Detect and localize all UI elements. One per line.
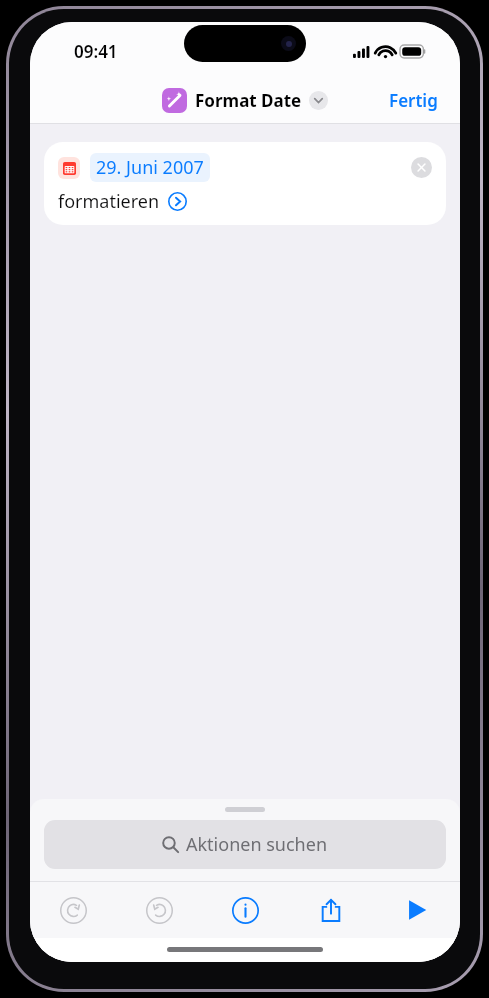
button[interactable]: Teilen	[288, 882, 374, 938]
staticText: 09:41	[74, 40, 118, 63]
staticText: 29. Juni 2007	[96, 155, 204, 180]
button[interactable]: Weitere Optionen	[168, 192, 187, 211]
button[interactable]: Format Date	[162, 88, 328, 113]
staticText: formatieren	[58, 189, 160, 214]
button[interactable]: Ausführen	[374, 882, 460, 938]
button[interactable]: Informationen	[202, 882, 288, 938]
button[interactable]: Widerrufen	[30, 882, 116, 938]
other: Menü öffnen	[309, 91, 328, 110]
button[interactable]: Fertig	[385, 85, 442, 116]
button[interactable]: Aktion entfernen	[411, 157, 432, 178]
button[interactable]: 29. Juni 2007	[90, 153, 210, 182]
button[interactable]: Wiederholen	[116, 882, 202, 938]
button[interactable]: 29. Juni 2007	[44, 142, 446, 225]
staticText: Aktionen suchen	[186, 832, 328, 857]
staticText: Fertig	[389, 89, 438, 112]
button[interactable]: Aktionen suchen	[44, 820, 446, 869]
staticText: Format Date	[195, 89, 302, 112]
